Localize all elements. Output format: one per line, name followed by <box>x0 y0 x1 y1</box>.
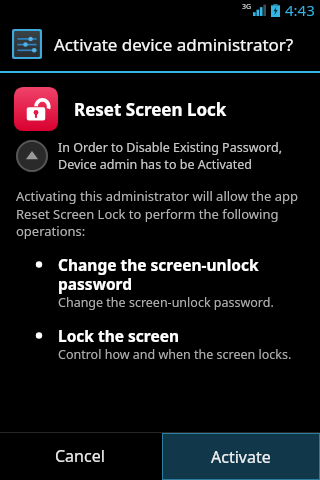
staticText: Reset Screen Lock <box>74 98 227 121</box>
button[interactable]: Activate <box>162 433 320 480</box>
staticText: 4:43 <box>285 0 315 20</box>
staticText: Lock the screen <box>58 325 180 346</box>
staticText: In Order to Disable Existing Password, D… <box>58 139 308 173</box>
staticText: Cancel <box>55 445 105 467</box>
staticText: Activate <box>211 446 271 468</box>
button[interactable]: Expand details <box>16 139 308 173</box>
staticText: 3G <box>242 2 252 12</box>
staticText: Activate device administrator? <box>54 33 294 56</box>
staticText: Change the screen-unlock password. <box>58 294 274 311</box>
button[interactable]: Cancel <box>0 432 160 480</box>
staticText: Activating this administrator will allow… <box>16 187 304 240</box>
staticText: Control how and when the screen locks. <box>58 346 292 363</box>
staticText: Change the screen-unlock password <box>58 254 306 294</box>
